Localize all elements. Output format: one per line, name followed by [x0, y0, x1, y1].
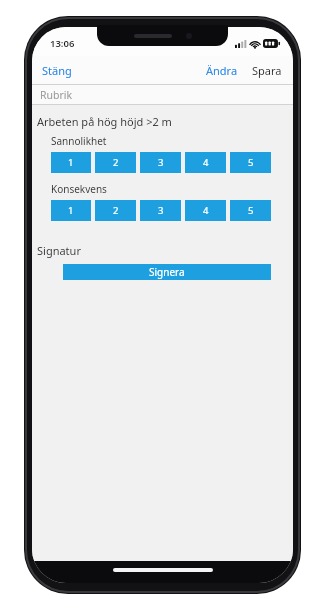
- staticText: 13:06: [50, 37, 75, 50]
- staticText: 2: [113, 156, 119, 169]
- staticText: 1: [68, 204, 74, 217]
- button[interactable]: 5: [230, 152, 271, 173]
- staticText: 3: [158, 156, 164, 169]
- button[interactable]: 1: [51, 200, 91, 221]
- staticText: 1: [68, 156, 74, 169]
- staticText: 3: [158, 204, 164, 217]
- button[interactable]: 2: [95, 152, 136, 173]
- staticText: 2: [113, 204, 119, 217]
- staticText: Stäng: [42, 63, 72, 78]
- staticText: Spara: [252, 63, 282, 78]
- button[interactable]: Spara: [245, 56, 293, 84]
- button[interactable]: 2: [95, 200, 136, 221]
- staticText: 5: [248, 156, 254, 169]
- button[interactable]: Ändra: [199, 56, 245, 84]
- staticText: Rubrik: [40, 88, 73, 102]
- staticText: Sannolikhet: [51, 134, 107, 148]
- staticText: Signatur: [37, 243, 81, 258]
- staticText: 4: [203, 204, 209, 217]
- staticText: Signera: [149, 265, 185, 279]
- staticText: 5: [248, 204, 254, 217]
- button[interactable]: 5: [230, 200, 271, 221]
- staticText: Konsekvens: [51, 182, 107, 196]
- button[interactable]: 3: [140, 200, 181, 221]
- button[interactable]: 3: [140, 152, 181, 173]
- button[interactable]: 4: [185, 200, 226, 221]
- button[interactable]: Rubrik: [32, 85, 293, 104]
- staticText: Arbeten på hög höjd >2 m: [37, 114, 172, 129]
- staticText: Ändra: [206, 63, 238, 78]
- button[interactable]: Signera: [63, 264, 271, 280]
- button[interactable]: Stäng: [32, 56, 82, 84]
- staticText: 4: [203, 156, 209, 169]
- button[interactable]: 4: [185, 152, 226, 173]
- button[interactable]: 1: [51, 152, 91, 173]
